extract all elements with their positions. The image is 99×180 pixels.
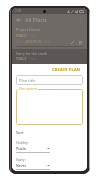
staticText: 2:45	[15, 9, 22, 13]
button[interactable]: Delete	[77, 39, 83, 45]
staticText: PUBLIC	[16, 34, 27, 38]
staticText: PUBLIC	[16, 57, 27, 61]
staticText: Public	[16, 146, 27, 151]
staticText: CREATE PLAN	[52, 67, 81, 72]
staticText: Date:	[16, 40, 24, 44]
staticText: Visibility:	[16, 141, 29, 145]
button[interactable]	[16, 89, 83, 125]
button[interactable]: CREATE PLAN	[50, 65, 83, 74]
staticText: • me	[29, 57, 36, 61]
button[interactable]: Back	[12, 14, 87, 25]
button[interactable]: Plan title	[16, 75, 83, 85]
button[interactable]: Project Future	[12, 25, 87, 49]
staticText: Sorry for the crash	[16, 51, 48, 56]
staticText: 2023-07-19	[25, 40, 41, 44]
staticText: All Plans	[25, 16, 47, 23]
button[interactable]: Back	[15, 16, 23, 24]
staticText: Sort	[16, 130, 24, 135]
button[interactable]: Never	[16, 163, 50, 168]
button[interactable]: More options	[76, 16, 84, 24]
staticText: Plan content	[19, 87, 37, 91]
button[interactable]: Public	[16, 146, 50, 151]
button[interactable]: Sorry for the crash	[12, 49, 87, 64]
staticText: Expiry:	[16, 158, 26, 162]
staticText: • 14.8	[42, 40, 50, 44]
button[interactable]: Edit	[69, 39, 75, 45]
staticText: Project Future	[16, 27, 41, 32]
staticText: Plan title	[19, 78, 36, 83]
staticText: • me	[29, 34, 36, 38]
staticText: Never	[16, 163, 27, 168]
